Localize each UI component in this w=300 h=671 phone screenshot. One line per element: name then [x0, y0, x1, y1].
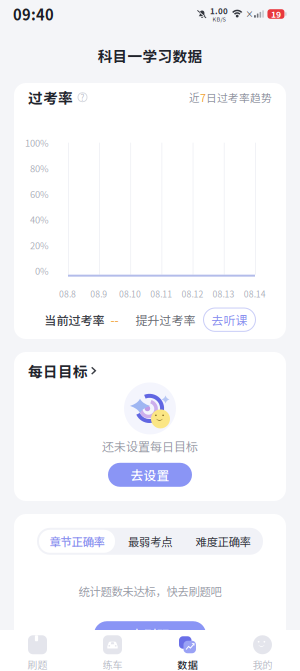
button[interactable]: 每日目标 [14, 347, 286, 381]
staticText: 每日目标 [28, 360, 88, 381]
staticText: 60% [30, 187, 49, 201]
staticText: 7 [200, 89, 206, 105]
staticText: 80% [30, 161, 49, 175]
staticText: 08.11 [150, 287, 172, 300]
staticText: × [245, 8, 253, 20]
staticText: 练车 [102, 657, 122, 671]
staticText: 09:40 [13, 3, 54, 25]
staticText: 19 [271, 8, 281, 20]
staticText: 08.9 [90, 287, 107, 300]
staticText: 还未设置每日目标 [102, 437, 198, 455]
button[interactable]: 去听课 [203, 308, 255, 331]
staticText: 08.10 [119, 287, 141, 300]
staticText: 100% [25, 136, 49, 149]
button[interactable]: 去设置 [108, 463, 192, 487]
staticText: 08.8 [59, 287, 76, 300]
button[interactable]: 去刷题 [94, 621, 206, 647]
button[interactable]: 难度正确率 [185, 530, 261, 553]
staticText: 章节正确率 [49, 533, 104, 549]
staticText: 08.14 [244, 287, 266, 300]
staticText: 去刷题 [130, 625, 169, 643]
staticText: 去设置 [130, 466, 169, 484]
staticText: 数据 [177, 657, 197, 671]
staticText: 08.12 [181, 287, 203, 300]
staticText: 40% [30, 213, 49, 226]
staticText: ? [80, 91, 84, 103]
staticText: 08.13 [213, 287, 235, 300]
staticText: 去听课 [211, 311, 247, 328]
staticText: 1.00 [210, 5, 228, 16]
staticText: -- [110, 311, 118, 328]
button[interactable]: 我的 [225, 630, 300, 671]
staticText: 提升过考率 [135, 311, 195, 328]
staticText: 统计题数未达标，快去刷题吧 [78, 583, 221, 599]
staticText: 0% [35, 264, 49, 277]
button[interactable]: 数据 [150, 630, 225, 671]
staticText: 过考率 [28, 87, 73, 108]
staticText: 最弱考点 [128, 533, 172, 549]
staticText: 我的 [252, 657, 272, 671]
staticText: 科目一学习数据 [97, 45, 202, 66]
button[interactable]: 章节正确率 [39, 530, 115, 553]
staticText: 刷题 [27, 657, 47, 671]
staticText: 近 [189, 89, 200, 105]
staticText: 当前过考率 [44, 311, 104, 328]
staticText: KB/S [212, 15, 225, 23]
button[interactable]: 刷题 [0, 630, 75, 671]
staticText: 20% [30, 238, 49, 252]
staticText: 难度正确率 [195, 533, 250, 549]
staticText: 日过考率趋势 [206, 89, 272, 105]
button[interactable]: 练车 [75, 630, 150, 671]
button[interactable]: 最弱考点 [115, 530, 185, 553]
